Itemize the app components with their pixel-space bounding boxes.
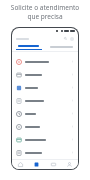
staticText: Solicite o atendimento que precisa — [0, 3, 90, 21]
button[interactable]: Serviços — [29, 160, 44, 169]
button[interactable] — [12, 81, 78, 94]
button[interactable]: Perfil — [62, 160, 77, 169]
button[interactable] — [12, 43, 45, 51]
button[interactable]: Início — [13, 160, 28, 169]
button[interactable] — [45, 43, 78, 51]
button[interactable] — [12, 120, 78, 133]
button[interactable]: Cartões — [46, 160, 61, 169]
button[interactable] — [12, 133, 78, 146]
button[interactable] — [12, 68, 78, 81]
button[interactable]: Pesquisar — [12, 34, 78, 43]
button[interactable] — [12, 146, 78, 159]
button[interactable] — [12, 107, 78, 120]
button[interactable] — [12, 55, 78, 68]
button[interactable] — [12, 94, 78, 107]
